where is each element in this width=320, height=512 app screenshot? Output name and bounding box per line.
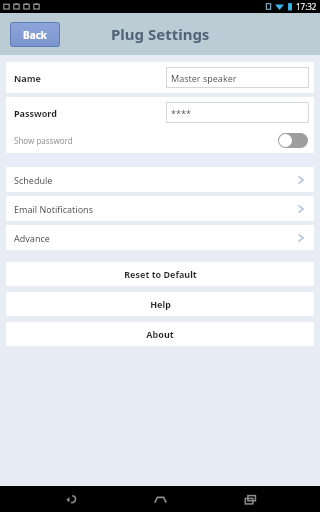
button[interactable]: About xyxy=(6,322,314,346)
staticText: Name xyxy=(14,72,41,84)
staticText: Password xyxy=(14,107,57,119)
button[interactable]: Email Notifications xyxy=(6,196,314,221)
staticText: Reset to Default xyxy=(124,268,197,280)
button[interactable]: Show password toggle xyxy=(278,133,308,148)
button[interactable]: Recent apps xyxy=(219,486,281,512)
staticText: **** xyxy=(171,107,191,119)
button[interactable]: Help xyxy=(6,292,314,316)
button[interactable]: Home xyxy=(129,486,191,512)
staticText: Help xyxy=(150,298,171,310)
button[interactable]: Schedule xyxy=(6,167,314,192)
button[interactable]: Password xyxy=(6,97,314,127)
button[interactable]: Name xyxy=(6,62,314,93)
button[interactable]: Advance xyxy=(6,225,314,250)
staticText: Plug Settings xyxy=(111,24,210,44)
button[interactable]: Show password xyxy=(6,127,314,153)
staticText: 17:32 xyxy=(296,1,317,12)
staticText: Master speaker xyxy=(171,72,237,84)
button[interactable]: Reset to Default xyxy=(6,262,314,286)
staticText: Back xyxy=(23,28,47,42)
button[interactable]: Back xyxy=(10,22,60,47)
button[interactable]: Back xyxy=(39,486,101,512)
staticText: Schedule xyxy=(14,174,53,186)
staticText: About xyxy=(146,328,174,340)
staticText: Advance xyxy=(14,232,50,244)
staticText: Show password xyxy=(14,135,73,146)
staticText: Email Notifications xyxy=(14,203,93,215)
